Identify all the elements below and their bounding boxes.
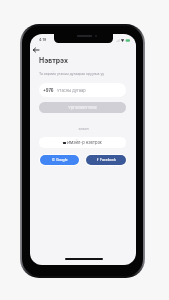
button[interactable]: G <box>39 154 80 166</box>
staticText: Facebook <box>100 158 116 162</box>
staticText: +976 <box>43 88 54 93</box>
staticText: Нэвтрэх <box>39 56 68 64</box>
button[interactable]: +976 <box>39 83 126 97</box>
staticText: Үргэлжлүүлэх <box>68 105 97 110</box>
staticText: 4:19 <box>39 38 47 42</box>
button[interactable]: f <box>85 154 127 166</box>
staticText: G <box>52 158 55 162</box>
staticText: Имэйл-р нэвтрэх <box>67 140 102 145</box>
staticText: f <box>97 158 99 162</box>
staticText: Та өөрийн утасны дугаараа оруулна уу <box>39 72 109 76</box>
button[interactable]: Имэйл-р нэвтрэх <box>39 137 126 148</box>
staticText: эсвэл <box>78 127 89 131</box>
staticText: Утасны дугаар <box>57 88 86 93</box>
button[interactable]: Үргэлжлүүлэх <box>39 102 126 113</box>
button[interactable]: Back <box>30 44 42 56</box>
staticText: Google <box>56 158 68 162</box>
